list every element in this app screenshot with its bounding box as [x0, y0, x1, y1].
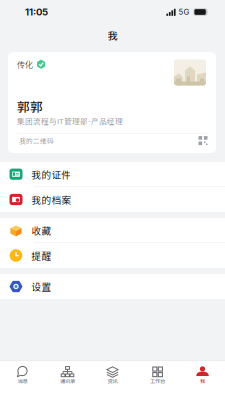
- staticText: 消息: [17, 377, 27, 385]
- button[interactable]: 我的档案: [0, 187, 225, 212]
- staticText: 传化: [17, 58, 33, 70]
- staticText: 集团流程与IT管理部-产品经理: [17, 116, 123, 127]
- staticText: 我的档案: [31, 192, 71, 206]
- button[interactable]: 我的二维码: [8, 134, 216, 153]
- button[interactable]: 提醒: [0, 243, 225, 268]
- staticText: 通讯录: [60, 377, 75, 385]
- staticText: 11:05: [25, 6, 48, 18]
- button[interactable]: 设置: [0, 274, 225, 299]
- button[interactable]: 工作台: [135, 363, 180, 400]
- staticText: 我的证件: [31, 167, 71, 181]
- staticText: 郭郭: [17, 97, 43, 115]
- staticText: 工作台: [150, 377, 165, 385]
- button[interactable]: 通讯录: [45, 363, 90, 400]
- staticText: 资讯: [107, 377, 117, 385]
- button[interactable]: 我的证件: [0, 162, 225, 187]
- staticText: 我的二维码: [19, 136, 54, 145]
- button[interactable]: 资讯: [90, 363, 135, 400]
- button[interactable]: 消息: [0, 363, 45, 400]
- staticText: 我: [107, 28, 117, 42]
- button[interactable]: 收藏: [0, 218, 225, 243]
- staticText: 我: [200, 377, 205, 385]
- staticText: 设置: [31, 279, 51, 293]
- staticText: 5G: [178, 7, 189, 17]
- staticText: 收藏: [31, 223, 51, 237]
- button[interactable]: 我: [180, 363, 225, 400]
- staticText: 提醒: [31, 248, 51, 262]
